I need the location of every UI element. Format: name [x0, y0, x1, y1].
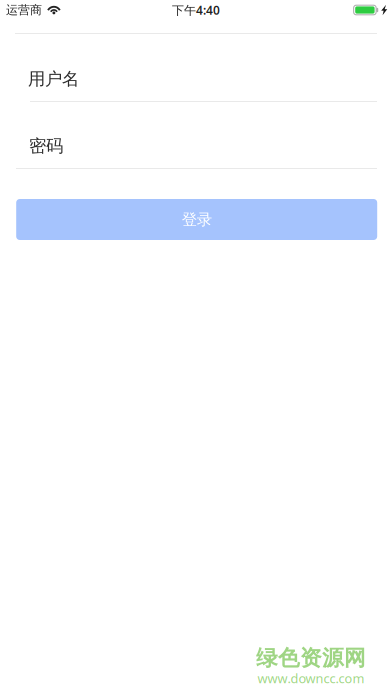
- staticText: www.downcc.com: [257, 670, 364, 687]
- staticText: 运营商: [6, 3, 42, 17]
- staticText: 登录: [182, 210, 212, 229]
- staticText: 密码: [29, 135, 63, 157]
- button[interactable]: 登录: [15, 199, 376, 240]
- button[interactable]: 用户名: [0, 34, 392, 101]
- staticText: 下午4:40: [172, 2, 220, 18]
- staticText: 绿色资源网: [256, 644, 366, 672]
- staticText: 用户名: [28, 68, 79, 90]
- button[interactable]: 密码: [0, 102, 392, 168]
